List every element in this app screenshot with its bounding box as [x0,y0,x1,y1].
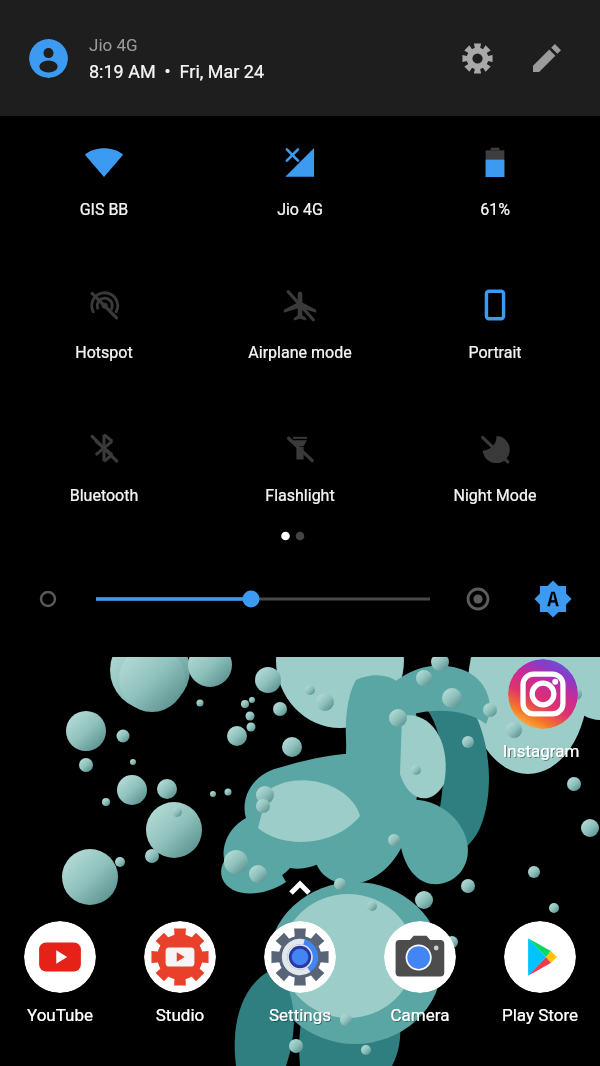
staticText: 8:19 AM • Fri, Mar 24 [89,61,265,82]
button[interactable]: Settings [453,34,501,82]
staticText: YouTube [0,1006,141,1026]
staticText: Hotspot [49,343,159,362]
staticText: YouTube [0,1005,140,1025]
button[interactable]: Camera [384,921,456,993]
button[interactable]: Brightness [90,585,436,613]
button[interactable]: Settings [264,921,336,993]
staticText: Bluetooth [49,486,159,505]
button[interactable]: Jio 4G [245,144,355,222]
button[interactable]: Studio [144,921,216,993]
button[interactable]: Airplane mode [245,287,355,365]
staticText: Flashlight [245,486,355,505]
button[interactable]: Hotspot [49,287,159,365]
button[interactable]: GIS BB [49,144,159,222]
button[interactable]: Auto brightness [533,579,573,619]
button[interactable]: Edit [523,34,571,82]
button[interactable]: Portrait [440,287,550,365]
staticText: Instagram [462,742,600,762]
staticText: Camera [341,1006,501,1026]
button[interactable]: Bluetooth [49,430,159,508]
staticText: Night Mode [440,486,550,505]
staticText: Airplane mode [245,343,355,362]
staticText: Instagram [461,741,600,761]
button[interactable]: Flashlight [245,430,355,508]
staticText: Jio 4G [89,35,138,55]
staticText: Settings [221,1006,381,1026]
staticText: Play Store [461,1006,600,1026]
staticText: Studio [101,1006,261,1026]
button[interactable]: Night Mode [440,430,550,508]
staticText: 61% [440,200,550,219]
staticText: Jio 4G [245,200,355,219]
button[interactable]: Instagram [508,659,578,729]
staticText: Settings [220,1005,380,1025]
button[interactable]: 61% [440,144,550,222]
button[interactable]: YouTube [24,921,96,993]
staticText: Play Store [460,1005,600,1025]
button[interactable]: User profile [29,39,68,78]
staticText: Studio [100,1005,260,1025]
staticText: Camera [340,1005,500,1025]
staticText: Portrait [440,343,550,362]
button[interactable]: Play Store [504,921,576,993]
staticText: GIS BB [49,200,159,219]
